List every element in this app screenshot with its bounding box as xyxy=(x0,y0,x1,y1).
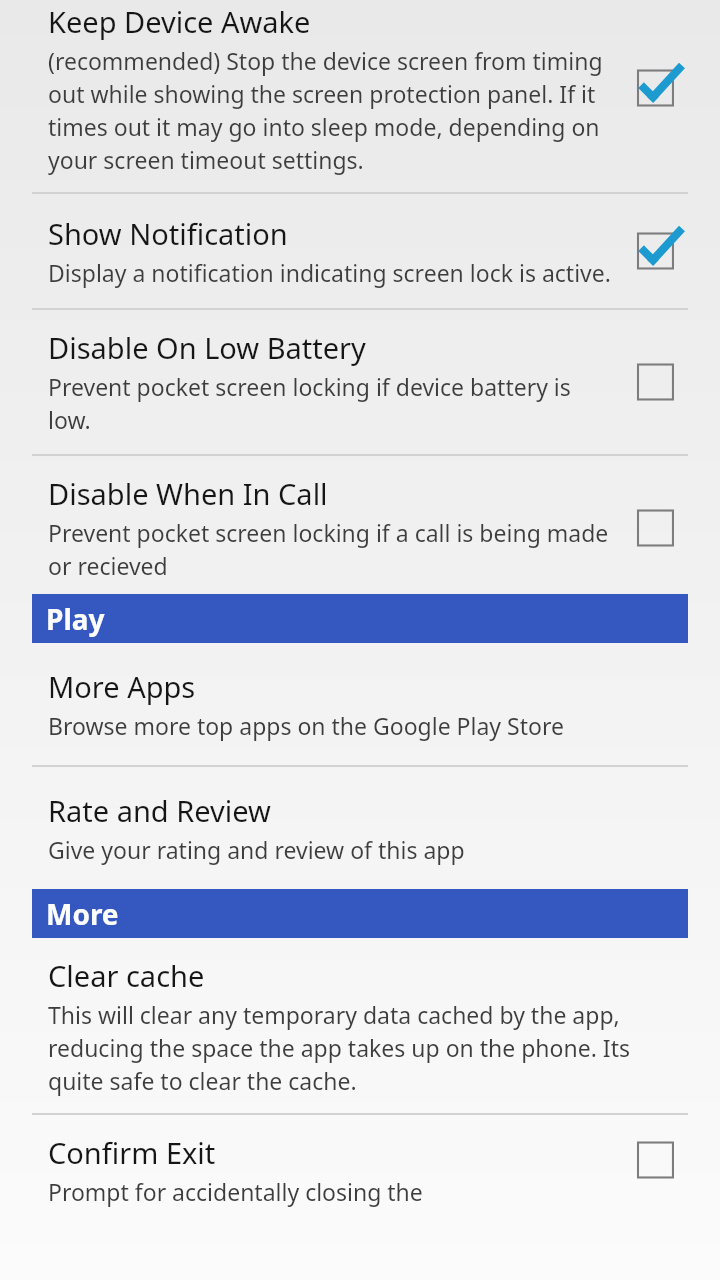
staticText: Clear cache xyxy=(48,956,205,995)
button[interactable]: Show Notification xyxy=(0,194,720,308)
staticText: Prevent pocket screen locking if device … xyxy=(48,371,616,436)
button[interactable]: Clear cache xyxy=(0,938,720,1113)
button[interactable]: Disable When In Call xyxy=(0,456,720,594)
staticText: Prompt for accidentally closing the xyxy=(48,1176,423,1207)
button[interactable]: Keep Device Awake xyxy=(0,0,720,192)
staticText: Confirm Exit xyxy=(48,1133,216,1172)
staticText: More Apps xyxy=(48,667,196,706)
staticText: Give your rating and review of this app xyxy=(48,834,465,865)
staticText: Disable When In Call xyxy=(48,474,328,513)
staticText: Keep Device Awake xyxy=(48,2,311,41)
staticText: Prevent pocket screen locking if a call … xyxy=(48,517,616,582)
staticText: More xyxy=(46,895,119,933)
staticText: (recommended) Stop the device screen fro… xyxy=(48,45,616,176)
button[interactable]: More Apps xyxy=(0,643,720,765)
staticText: Browse more top apps on the Google Play … xyxy=(48,710,564,741)
staticText: Play xyxy=(46,600,105,638)
button[interactable]: Confirm Exit xyxy=(0,1115,720,1207)
staticText: Disable On Low Battery xyxy=(48,328,366,367)
button[interactable]: Disable On Low Battery xyxy=(0,310,720,454)
staticText: Show Notification xyxy=(48,214,288,253)
button[interactable]: Rate and Review xyxy=(0,767,720,889)
staticText: Rate and Review xyxy=(48,791,271,830)
staticText: Display a notification indicating screen… xyxy=(48,257,611,288)
staticText: This will clear any temporary data cache… xyxy=(48,999,688,1097)
